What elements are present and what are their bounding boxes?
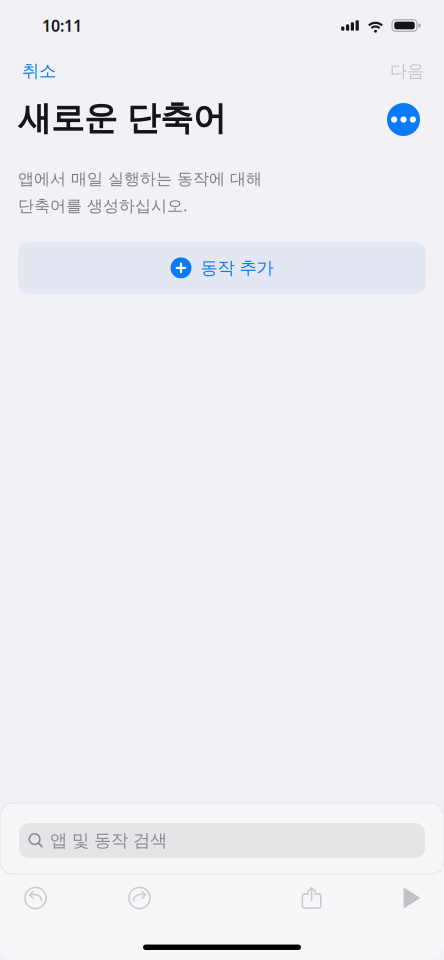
staticText: 앱에서 매일 실행하는 동작에 대해 (18, 169, 262, 189)
button[interactable]: Redo (104, 875, 175, 921)
button[interactable]: 취소 (0, 56, 78, 86)
staticText: 10:11 (42, 15, 82, 36)
staticText: 단축어를 생성하십시오. (18, 195, 187, 216)
button[interactable]: Run (380, 875, 444, 921)
staticText: 다음 (390, 60, 424, 82)
button[interactable]: 다음 (370, 56, 444, 86)
button[interactable]: More (387, 96, 426, 141)
button[interactable]: Share (276, 875, 347, 921)
staticText: 앱 및 동작 검색 (50, 830, 167, 851)
staticText: 동작 추가 (200, 257, 273, 279)
button[interactable]: 앱 및 동작 검색 (19, 823, 425, 858)
button[interactable]: Undo (0, 875, 71, 921)
button[interactable]: 동작 추가 (18, 242, 426, 294)
staticText: 새로운 단축어 (18, 98, 226, 139)
staticText: 취소 (22, 60, 56, 82)
